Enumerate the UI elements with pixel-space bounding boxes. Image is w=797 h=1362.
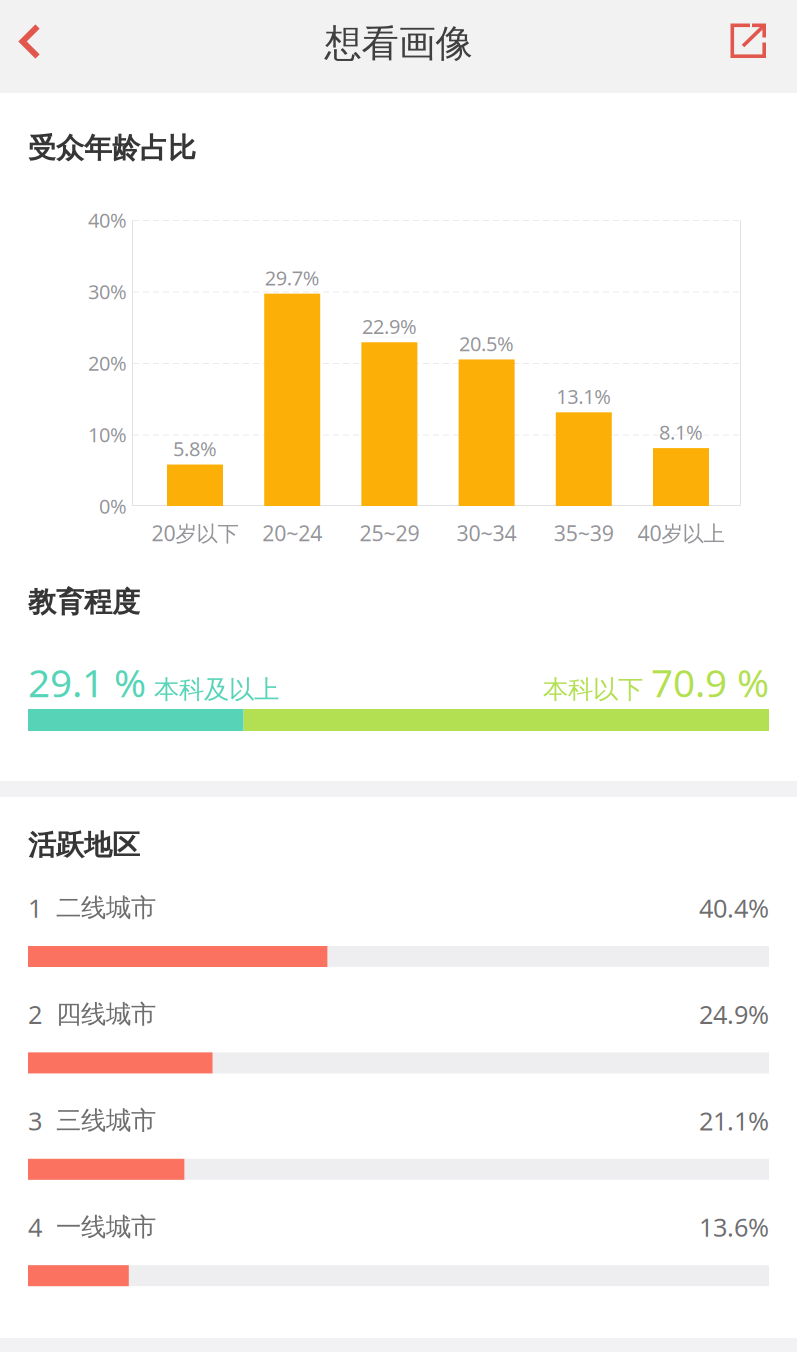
staticText: 5.8% bbox=[173, 435, 217, 462]
staticText: 29.1 % bbox=[28, 657, 146, 708]
staticText: 30% bbox=[88, 278, 127, 305]
staticText: 24.9% bbox=[699, 997, 769, 1031]
staticText: 30~34 bbox=[457, 519, 517, 547]
button[interactable]: Back bbox=[0, 0, 82, 85]
staticText: 40岁以上 bbox=[637, 519, 724, 547]
staticText: 20~24 bbox=[262, 519, 322, 547]
staticText: 本科及以上 bbox=[154, 674, 279, 705]
staticText: 4 bbox=[28, 1210, 42, 1244]
button[interactable]: 1 bbox=[28, 889, 769, 985]
staticText: 22.9% bbox=[362, 313, 417, 340]
staticText: 40% bbox=[88, 207, 127, 233]
staticText: 一线城市 bbox=[56, 1211, 156, 1243]
staticText: 本科以下 bbox=[543, 674, 643, 705]
staticText: 二线城市 bbox=[56, 892, 156, 923]
staticText: 25~29 bbox=[359, 519, 419, 547]
staticText: 20.5% bbox=[459, 330, 514, 357]
staticText: 1 bbox=[28, 891, 42, 925]
staticText: 20岁以下 bbox=[151, 519, 238, 547]
staticText: 21.1% bbox=[699, 1104, 769, 1137]
staticText: 活跃地区 bbox=[28, 828, 140, 862]
staticText: 受众年龄占比 bbox=[28, 131, 196, 165]
staticText: 8.1% bbox=[659, 419, 703, 445]
staticText: 35~39 bbox=[554, 519, 614, 547]
staticText: 想看画像 bbox=[324, 21, 472, 66]
staticText: 29.7% bbox=[265, 264, 320, 291]
button[interactable]: 4 bbox=[28, 1208, 769, 1304]
staticText: 10% bbox=[88, 421, 127, 448]
staticText: 13.1% bbox=[556, 383, 611, 410]
staticText: 40.4% bbox=[699, 891, 769, 925]
staticText: 0% bbox=[99, 493, 127, 519]
staticText: 13.6% bbox=[699, 1210, 769, 1244]
staticText: 3 bbox=[28, 1104, 42, 1137]
button[interactable]: Share bbox=[700, 0, 797, 85]
staticText: 70.9 % bbox=[651, 657, 769, 708]
button[interactable]: 2 bbox=[28, 995, 769, 1091]
staticText: 教育程度 bbox=[28, 585, 140, 619]
button[interactable]: 3 bbox=[28, 1102, 769, 1198]
staticText: 20% bbox=[88, 350, 127, 376]
staticText: 四线城市 bbox=[56, 999, 156, 1030]
staticText: 2 bbox=[28, 997, 42, 1031]
staticText: 三线城市 bbox=[56, 1105, 156, 1136]
